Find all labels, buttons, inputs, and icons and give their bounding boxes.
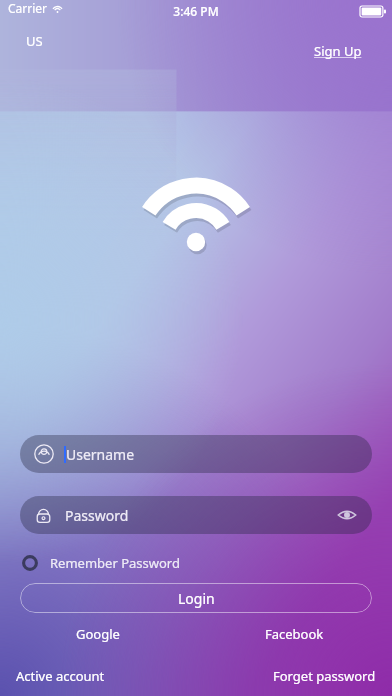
staticText: US: [26, 32, 43, 50]
button[interactable]: Active account: [14, 664, 107, 688]
button[interactable]: Show password: [336, 504, 358, 526]
staticText: Carrier: [8, 0, 48, 16]
staticText: Sign Up: [314, 42, 362, 60]
button[interactable]: Login: [20, 583, 372, 613]
button[interactable]: Google: [0, 622, 196, 646]
staticText: 3:46 PM: [0, 3, 392, 19]
staticText: Remember Password: [50, 554, 180, 572]
button[interactable]: Remember Password: [20, 550, 182, 576]
staticText: Forget password: [273, 667, 376, 685]
staticText: Google: [76, 625, 120, 643]
staticText: Facebook: [265, 625, 324, 643]
staticText: Password: [65, 506, 336, 525]
button[interactable]: Forget password: [271, 664, 378, 688]
button[interactable]: Facebook: [196, 622, 392, 646]
staticText: Login: [178, 589, 215, 608]
button[interactable]: Sign Up: [312, 40, 364, 62]
button[interactable]: Username: [20, 435, 372, 473]
staticText: Username: [66, 445, 135, 464]
staticText: Active account: [16, 667, 105, 685]
button[interactable]: Password: [20, 496, 372, 534]
